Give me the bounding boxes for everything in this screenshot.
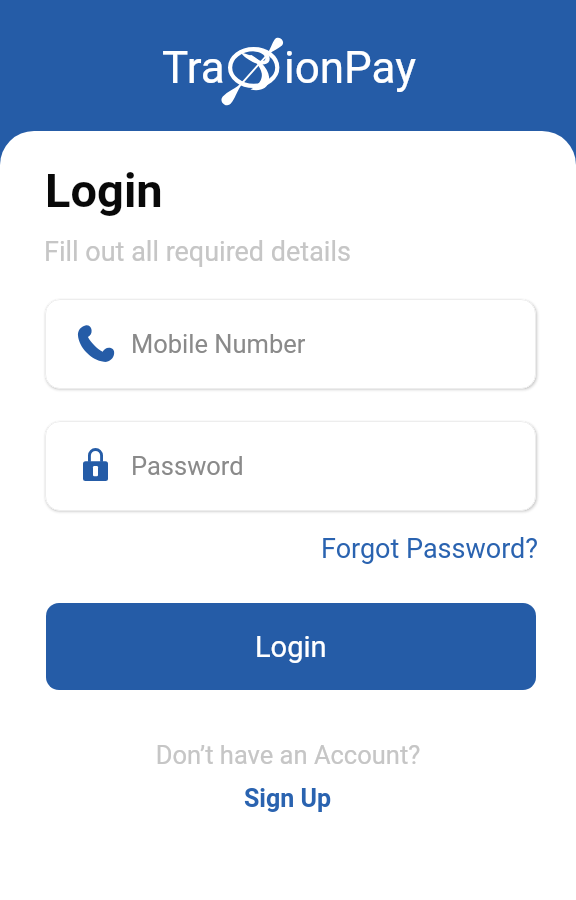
staticText: Password bbox=[131, 451, 244, 481]
staticText: Mobile Number bbox=[131, 329, 306, 359]
button[interactable]: Login bbox=[46, 603, 536, 690]
button[interactable]: Sign Up bbox=[244, 784, 332, 813]
staticText: Login bbox=[45, 163, 163, 218]
staticText: Don’t have an Account? bbox=[0, 740, 576, 770]
other: TransactionPay logo bbox=[208, 28, 292, 112]
staticText: Tra bbox=[162, 42, 225, 94]
button[interactable]: Password bbox=[45, 421, 536, 511]
button[interactable]: Forgot Password? bbox=[321, 533, 539, 565]
other: Mobile Number bbox=[77, 325, 115, 363]
staticText: Login bbox=[255, 630, 327, 664]
button[interactable]: Mobile Number bbox=[45, 299, 536, 389]
staticText: Fill out all required details bbox=[44, 236, 351, 268]
other: Password bbox=[83, 448, 108, 481]
staticText: ionPay bbox=[284, 42, 417, 94]
